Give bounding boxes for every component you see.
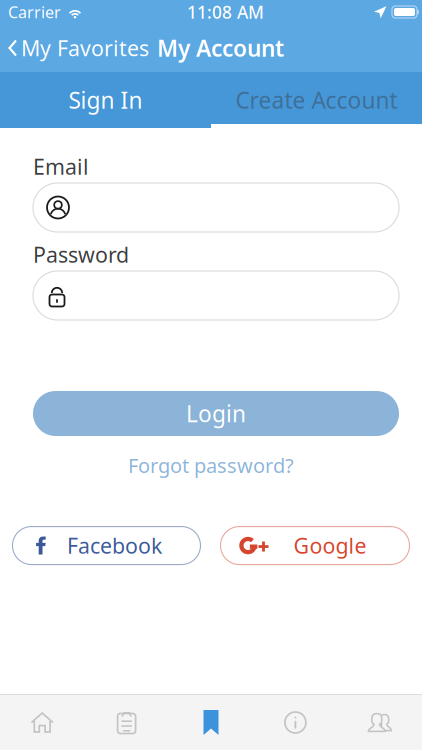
button[interactable]: Sign In bbox=[0, 74, 211, 126]
staticText: Google bbox=[293, 531, 366, 560]
staticText: Carrier bbox=[8, 1, 61, 23]
staticText: Password bbox=[33, 240, 129, 269]
staticText: Sign In bbox=[68, 85, 142, 115]
button[interactable]: Login bbox=[33, 391, 399, 436]
button[interactable]: Create Account bbox=[211, 74, 422, 126]
button[interactable]: Info bbox=[253, 695, 338, 750]
staticText: Forgot password? bbox=[128, 452, 294, 479]
button[interactable]: Google bbox=[220, 527, 409, 565]
button[interactable]: Home bbox=[0, 695, 84, 750]
button[interactable]: Favorites bbox=[169, 695, 253, 750]
staticText: 11:08 AM bbox=[187, 0, 264, 23]
button[interactable]: My Favorites bbox=[0, 28, 157, 68]
staticText: My Favorites bbox=[21, 34, 149, 62]
staticText: Facebook bbox=[67, 531, 162, 560]
staticText: My Account bbox=[157, 33, 284, 63]
button[interactable]: Facebook bbox=[12, 527, 200, 565]
staticText: Email bbox=[33, 152, 89, 181]
button[interactable]: Orders bbox=[84, 695, 169, 750]
staticText: Create Account bbox=[235, 85, 397, 115]
button[interactable]: Account bbox=[338, 695, 422, 750]
staticText: Login bbox=[186, 398, 246, 428]
button[interactable]: Forgot password? bbox=[128, 436, 294, 489]
